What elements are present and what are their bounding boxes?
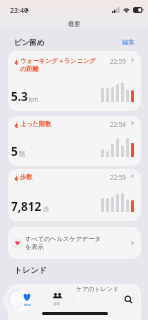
staticText: 22:59 — [110, 57, 126, 65]
staticText: 5.3 — [11, 88, 28, 104]
staticText: トレンド — [14, 265, 47, 275]
staticText: 上った階数 — [20, 120, 52, 128]
staticText: km — [29, 95, 39, 103]
staticText: 共有 — [53, 302, 60, 306]
button[interactable]: ウォーキング＋ランニング の距離 — [8, 51, 141, 111]
staticText: 歩 — [43, 205, 50, 213]
button[interactable]: 上った階数 — [8, 116, 141, 166]
staticText: ピン留め — [14, 38, 45, 47]
button[interactable]: 概要 — [13, 290, 41, 311]
staticText: 編集 — [122, 38, 135, 46]
staticText: 概要 — [68, 20, 81, 28]
staticText: 23:40 — [10, 6, 28, 16]
button[interactable]: 検索 — [117, 288, 140, 311]
staticText: ウォーキング＋ランニング の距離 — [20, 57, 96, 73]
staticText: 22:59 — [110, 173, 126, 181]
button[interactable]: ケアのトレンド — [8, 284, 141, 320]
staticText: 歩数 — [20, 173, 33, 181]
staticText: 階 — [19, 150, 26, 158]
button[interactable]: 歩数 — [8, 169, 141, 221]
staticText: すべてのヘルスケアデータ を表示 — [25, 235, 101, 251]
button[interactable]: 共有 — [43, 290, 71, 311]
button[interactable]: すべてのヘルスケアデータ を表示 — [8, 227, 141, 259]
staticText: 概要 — [24, 303, 31, 307]
staticText: 5 — [11, 143, 18, 159]
button[interactable]: 編集 — [117, 36, 140, 47]
staticText: 7,812 — [11, 198, 42, 214]
staticText: ケアのトレンド — [76, 285, 119, 293]
staticText: 22:54 — [110, 120, 126, 128]
